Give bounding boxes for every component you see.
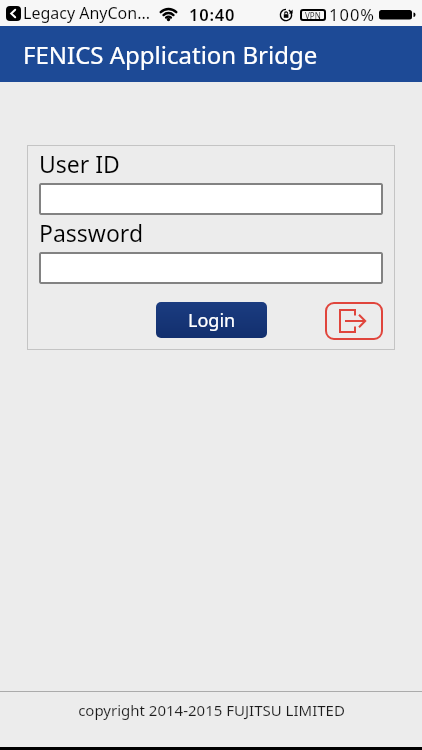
staticText: Legacy AnyCon... bbox=[23, 2, 151, 24]
staticText: VPN bbox=[305, 10, 321, 21]
staticText: Password bbox=[39, 217, 144, 248]
staticText: FENICS Application Bridge bbox=[23, 38, 318, 71]
staticText: Login bbox=[188, 308, 236, 333]
button[interactable] bbox=[325, 302, 383, 340]
staticText: 10:40 bbox=[189, 3, 236, 25]
staticText: User ID bbox=[39, 148, 120, 179]
button[interactable] bbox=[39, 252, 383, 284]
button[interactable] bbox=[6, 6, 21, 21]
staticText: copyright 2014-2015 FUJITSU LIMITED bbox=[78, 700, 345, 720]
button[interactable]: Login bbox=[156, 302, 267, 338]
button[interactable] bbox=[39, 183, 383, 215]
staticText: 100% bbox=[329, 3, 376, 25]
